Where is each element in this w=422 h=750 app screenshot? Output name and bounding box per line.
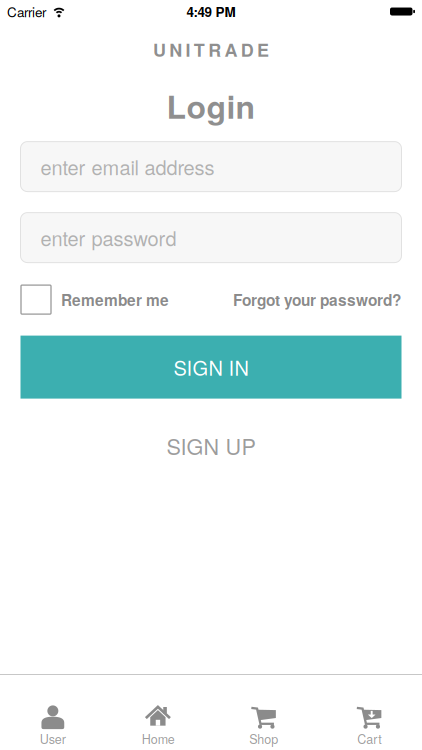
button[interactable]: Home xyxy=(105,675,211,750)
button[interactable]: enter email address xyxy=(20,142,401,192)
button[interactable]: SIGN IN xyxy=(20,336,401,399)
staticText: Login xyxy=(166,83,255,129)
staticText: Cart xyxy=(357,729,381,747)
staticText: enter email address xyxy=(40,152,214,181)
staticText: SIGN UP xyxy=(166,430,255,461)
staticText: I xyxy=(185,36,190,62)
staticText: Remember me xyxy=(61,288,169,311)
staticText: U xyxy=(153,36,166,62)
staticText: Home xyxy=(142,729,175,747)
button[interactable]: Shop xyxy=(211,675,316,750)
button[interactable]: enter password xyxy=(20,213,401,263)
staticText: E xyxy=(257,36,269,62)
button[interactable] xyxy=(21,285,51,314)
staticText: T xyxy=(194,36,205,62)
staticText: D xyxy=(241,36,254,62)
staticText: SIGN IN xyxy=(173,353,248,381)
staticText: Shop xyxy=(249,729,278,747)
staticText: User xyxy=(40,729,66,747)
button[interactable]: Cart xyxy=(316,675,422,750)
button[interactable]: SIGN UP xyxy=(166,430,255,461)
button[interactable]: User xyxy=(0,675,105,750)
staticText: 4:49 PM xyxy=(186,2,235,21)
button[interactable]: Remember me xyxy=(51,288,169,311)
staticText: N xyxy=(169,36,182,62)
button[interactable]: Forgot your password? xyxy=(233,288,401,311)
staticText: Forgot your password? xyxy=(233,288,401,311)
staticText: A xyxy=(224,36,237,62)
staticText: Carrier xyxy=(7,2,46,21)
staticText: R xyxy=(208,36,221,62)
staticText: enter password xyxy=(40,223,176,252)
